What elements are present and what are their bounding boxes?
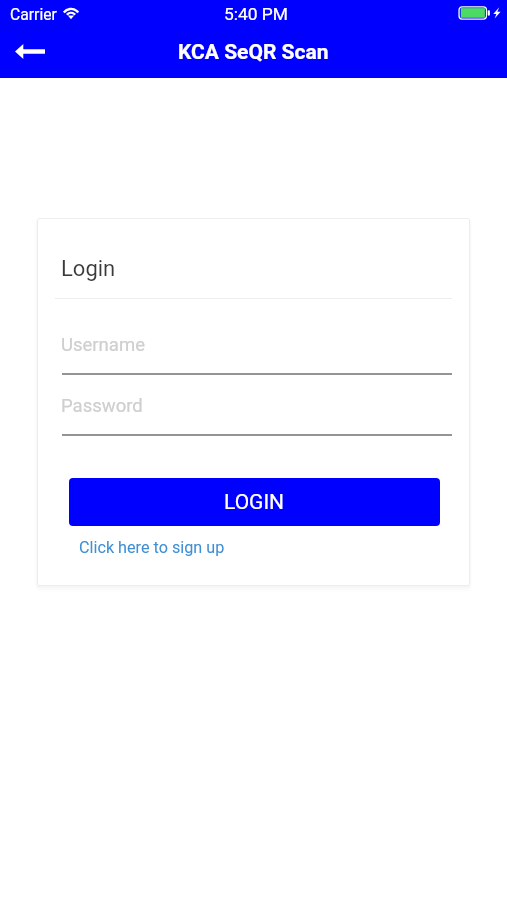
staticText: LOGIN	[224, 490, 285, 515]
staticText: Click here to sign up	[79, 538, 225, 557]
staticText: KCA SeQR Scan	[178, 40, 329, 65]
staticText: Password	[61, 395, 143, 417]
staticText: Login	[61, 256, 116, 282]
staticText: 5:40 PM	[224, 4, 289, 24]
button[interactable]: Back	[2, 26, 58, 76]
staticText: Username	[61, 334, 145, 356]
button[interactable]: LOGIN	[69, 478, 440, 526]
button[interactable]: Click here to sign up	[79, 538, 225, 557]
staticText: Carrier	[10, 5, 57, 23]
button[interactable]: Password	[62, 387, 452, 436]
button[interactable]: Username	[62, 326, 452, 375]
